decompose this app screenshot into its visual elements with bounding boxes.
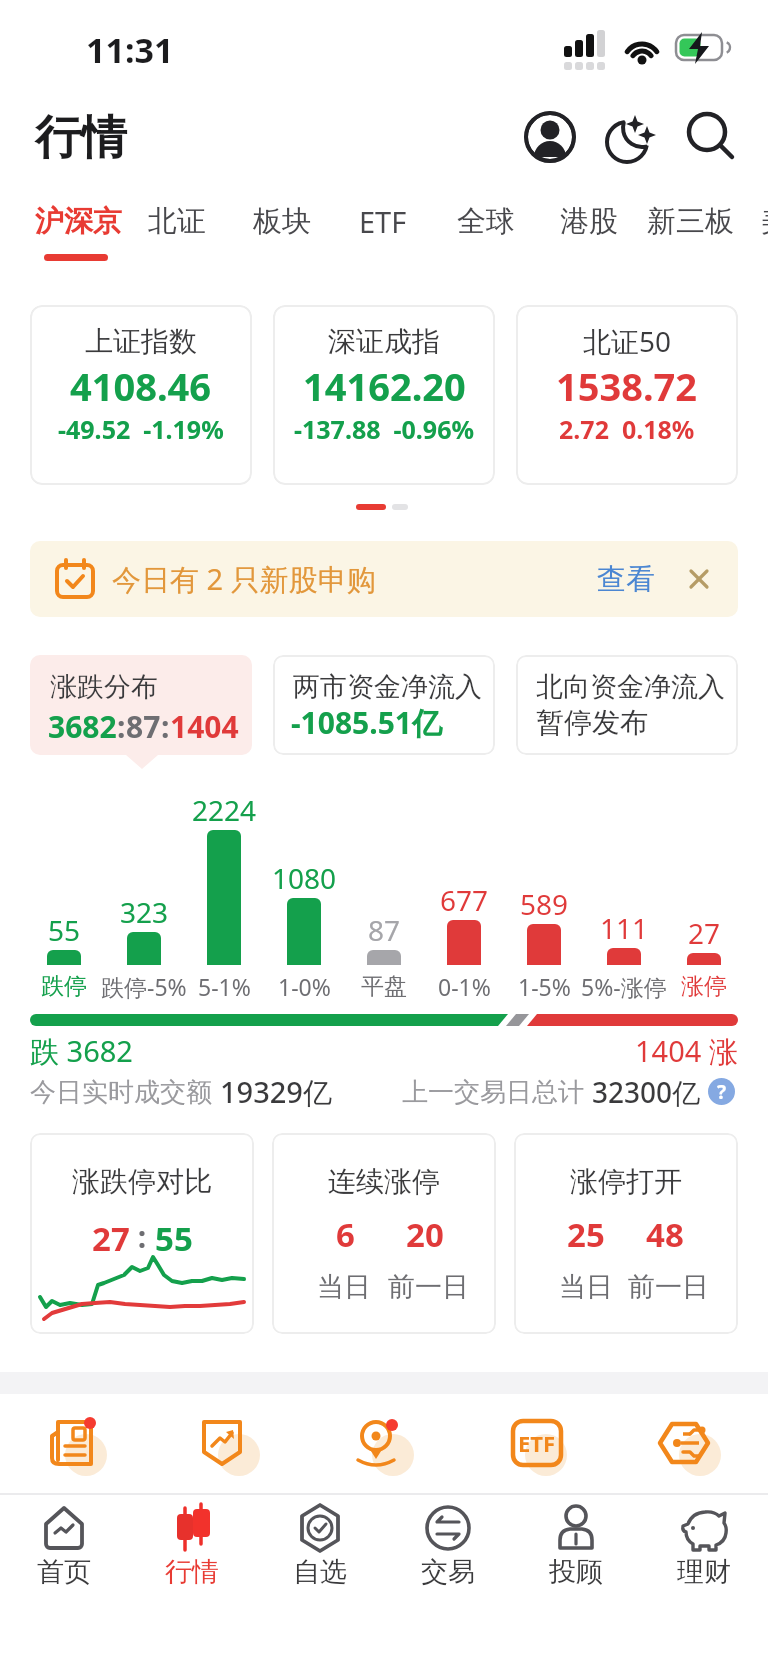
button[interactable]: [273, 305, 495, 485]
staticText: 27: [92, 1216, 130, 1252]
staticText: 美股: [761, 203, 768, 240]
staticText: 涨跌停对比: [72, 1164, 212, 1199]
staticText: 前一日: [388, 1270, 469, 1304]
staticText: 自选: [293, 1555, 347, 1589]
staticText: 两市资金净流入: [293, 670, 482, 704]
button[interactable]: [272, 1133, 496, 1334]
staticText: 55: [48, 911, 81, 949]
staticText: 55: [155, 1216, 193, 1252]
staticText: ETF: [518, 1428, 556, 1458]
button[interactable]: [514, 1133, 738, 1334]
staticText: 涨停: [681, 972, 727, 1001]
button[interactable]: 新三板: [647, 196, 734, 246]
staticText: -49.52 -1.19%: [58, 412, 224, 446]
button[interactable]: [388, 1496, 508, 1606]
staticText: 上证指数: [85, 324, 197, 359]
staticText: 北证50: [583, 322, 672, 360]
staticText: 平盘: [361, 972, 407, 1001]
staticText: 行情: [165, 1555, 219, 1589]
button[interactable]: [516, 305, 738, 485]
staticText: :: [161, 706, 170, 738]
staticText: 1-5%: [518, 971, 571, 1002]
button[interactable]: [523, 110, 577, 164]
button[interactable]: [350, 1412, 418, 1484]
button[interactable]: [602, 110, 656, 164]
button[interactable]: ?: [708, 1078, 735, 1105]
staticText: 14162.20: [303, 360, 466, 412]
staticText: 沪深京: [35, 203, 122, 240]
staticText: 涨停打开: [570, 1164, 682, 1199]
staticText: 1538.72: [556, 360, 698, 412]
staticText: 暂停发布: [536, 705, 648, 740]
staticText: 跌停: [41, 972, 87, 1001]
staticText: 深证成指: [328, 324, 440, 359]
staticText: 4108.46: [70, 360, 212, 412]
button[interactable]: 港股: [560, 196, 618, 246]
staticText: 2.72 0.18%: [559, 412, 695, 446]
button[interactable]: [685, 110, 739, 164]
staticText: 1404 涨: [635, 1031, 738, 1071]
staticText: :: [117, 706, 126, 738]
staticText: 跌 3682: [30, 1031, 133, 1071]
button[interactable]: ETF: [359, 196, 407, 246]
staticText: 111: [600, 909, 649, 947]
staticText: 677: [440, 881, 489, 919]
button[interactable]: 北证: [148, 196, 206, 246]
staticText: 理财: [677, 1555, 731, 1589]
button[interactable]: [30, 541, 738, 617]
button[interactable]: [688, 568, 710, 590]
button[interactable]: 沪深京: [35, 196, 122, 246]
staticText: 跌停-5%: [101, 971, 187, 1002]
staticText: 6: [336, 1212, 355, 1257]
staticText: 查看: [597, 561, 655, 598]
staticText: 27: [688, 914, 721, 952]
staticText: 全球: [457, 203, 515, 240]
button[interactable]: [260, 1496, 380, 1606]
staticText: 25: [567, 1212, 605, 1257]
staticText: 今日有 2 只新股申购: [112, 559, 376, 599]
staticText: ?: [717, 1079, 727, 1105]
staticText: 上一交易日总计: [402, 1076, 584, 1109]
staticText: 1-0%: [278, 971, 331, 1002]
button[interactable]: [132, 1496, 252, 1606]
staticText: 北证: [148, 203, 206, 240]
staticText: 涨跌分布: [50, 670, 158, 704]
staticText: 行情: [35, 109, 127, 167]
staticText: 32300亿: [592, 1073, 701, 1111]
staticText: 11:31: [86, 27, 174, 73]
staticText: 交易: [421, 1555, 475, 1589]
staticText: 1080: [272, 859, 337, 897]
staticText: 87: [368, 911, 401, 949]
staticText: 连续涨停: [328, 1164, 440, 1199]
button[interactable]: 美股: [761, 196, 768, 246]
staticText: ETF: [359, 202, 407, 241]
button[interactable]: [644, 1496, 764, 1606]
staticText: 新三板: [647, 203, 734, 240]
staticText: 前一日: [628, 1270, 709, 1304]
staticText: 5-1%: [198, 971, 251, 1002]
staticText: 48: [646, 1212, 684, 1257]
button[interactable]: [30, 1133, 254, 1334]
staticText: 板块: [253, 203, 311, 240]
staticText: 323: [120, 893, 169, 931]
staticText: 2224: [192, 791, 257, 829]
staticText: 3682: [48, 706, 117, 738]
button[interactable]: [273, 655, 495, 755]
button[interactable]: [516, 655, 738, 755]
button[interactable]: [516, 1496, 636, 1606]
staticText: 20: [406, 1212, 444, 1257]
button[interactable]: [30, 305, 252, 485]
staticText: -137.88 -0.96%: [294, 412, 475, 446]
button[interactable]: 板块: [253, 196, 311, 246]
button[interactable]: [657, 1412, 725, 1484]
staticText: 19329亿: [220, 1072, 332, 1112]
button[interactable]: [503, 1412, 571, 1484]
button[interactable]: 全球: [457, 196, 515, 246]
staticText: 首页: [37, 1555, 91, 1589]
staticText: 1404: [170, 706, 239, 738]
button[interactable]: [30, 655, 252, 755]
button[interactable]: [4, 1496, 124, 1606]
button[interactable]: [196, 1412, 264, 1484]
staticText: -1085.51亿: [291, 702, 442, 743]
button[interactable]: [43, 1412, 111, 1484]
